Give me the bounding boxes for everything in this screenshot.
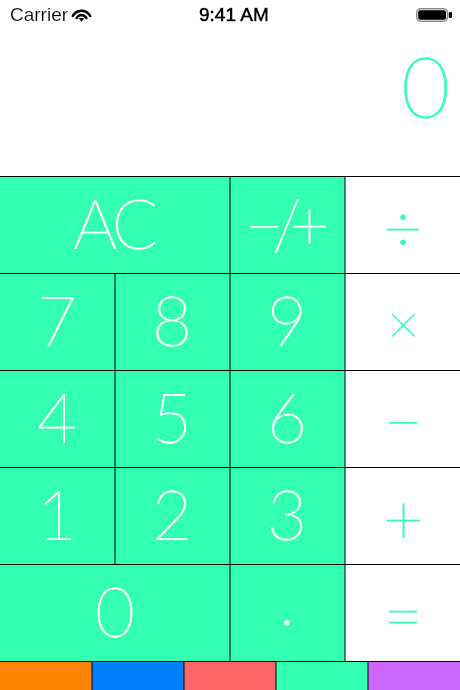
button[interactable]: 3 (230, 467, 345, 564)
button[interactable]: Theme colour 4 (276, 661, 368, 690)
staticText: 1 (37, 472, 78, 555)
button[interactable]: 8 (115, 273, 230, 370)
staticText: 0 (401, 34, 451, 136)
staticText: −/+ (244, 182, 318, 265)
button[interactable]: 9 (230, 273, 345, 370)
staticText: 2 (152, 472, 193, 555)
button[interactable]: . (230, 564, 345, 661)
staticText: − (383, 378, 424, 461)
button[interactable]: 5 (115, 370, 230, 467)
button[interactable]: 6 (230, 370, 345, 467)
staticText: 8 (152, 278, 193, 361)
button[interactable]: 2 (115, 467, 230, 564)
button[interactable]: AC (0, 176, 230, 273)
button[interactable]: 1 (0, 467, 115, 564)
other: Wi-Fi signal (72, 6, 91, 23)
staticText: 9:41 AM (199, 4, 269, 25)
staticText: + (383, 475, 425, 560)
staticText: 0 (95, 569, 136, 652)
button[interactable]: − (345, 370, 460, 467)
staticText: ÷ (383, 185, 424, 268)
button[interactable]: −/+ (230, 176, 345, 273)
button[interactable]: Theme colour 3 (184, 661, 276, 690)
staticText: . (279, 557, 296, 640)
button[interactable]: = (345, 564, 460, 661)
staticText: 3 (267, 472, 308, 555)
button[interactable]: Theme colour 5 (368, 661, 460, 690)
button[interactable]: × (345, 273, 460, 370)
staticText: 5 (152, 375, 193, 458)
staticText: 6 (267, 375, 308, 458)
button[interactable]: Theme colour 1 (0, 661, 92, 690)
button[interactable]: ÷ (345, 176, 460, 273)
button[interactable]: Theme colour 2 (92, 661, 184, 690)
staticText: × (387, 289, 420, 356)
button[interactable]: + (345, 467, 460, 564)
button[interactable]: 7 (0, 273, 115, 370)
other: Battery (416, 8, 452, 22)
staticText: 4 (37, 375, 78, 458)
staticText: = (383, 573, 424, 656)
staticText: Carrier (10, 4, 69, 25)
button[interactable]: 0 (0, 564, 230, 661)
button[interactable]: 4 (0, 370, 115, 467)
staticText: AC (73, 181, 154, 264)
staticText: 7 (37, 278, 78, 361)
staticText: 9 (267, 278, 308, 361)
